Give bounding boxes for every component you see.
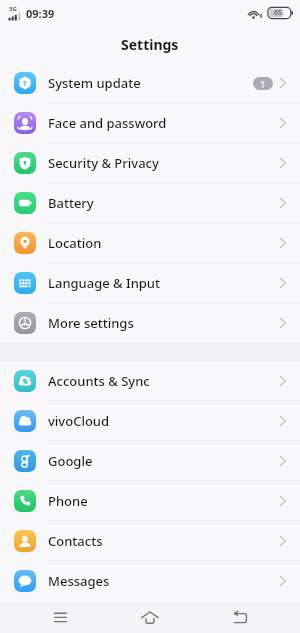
staticText: vivoCloud xyxy=(48,412,110,430)
button[interactable]: vivoCloud xyxy=(0,401,300,441)
staticText: Messages xyxy=(48,572,110,590)
button[interactable]: Security & Privacy xyxy=(0,143,300,183)
button[interactable] xyxy=(15,601,105,633)
button[interactable]: Contacts xyxy=(0,521,300,561)
staticText: Location xyxy=(48,234,102,252)
staticText: Settings xyxy=(121,35,179,54)
staticText: System update xyxy=(48,74,141,92)
button[interactable]: Phone xyxy=(0,481,300,521)
button[interactable] xyxy=(105,601,195,633)
staticText: Battery xyxy=(48,194,94,212)
button[interactable]: Language & Input xyxy=(0,263,300,303)
button[interactable]: System update xyxy=(0,63,300,103)
staticText: More settings xyxy=(48,314,134,332)
staticText: 65 xyxy=(274,8,283,18)
staticText: Google xyxy=(48,452,93,470)
staticText: Accounts & Sync xyxy=(48,372,150,390)
staticText: Language & Input xyxy=(48,274,160,292)
staticText: 09:39 xyxy=(26,6,55,21)
button[interactable]: Messages xyxy=(0,561,300,601)
staticText: Face and password xyxy=(48,114,167,132)
button[interactable]: Accounts & Sync xyxy=(0,361,300,401)
staticText: Contacts xyxy=(48,532,103,550)
staticText: Phone xyxy=(48,492,88,510)
staticText: Security & Privacy xyxy=(48,154,159,172)
staticText: 3G xyxy=(9,5,17,13)
button[interactable] xyxy=(195,601,285,633)
button[interactable]: Location xyxy=(0,223,300,263)
button[interactable]: Google xyxy=(0,441,300,481)
button[interactable]: Battery xyxy=(0,183,300,223)
staticText: 1 xyxy=(260,78,266,90)
button[interactable]: Face and password xyxy=(0,103,300,143)
button[interactable]: More settings xyxy=(0,303,300,343)
